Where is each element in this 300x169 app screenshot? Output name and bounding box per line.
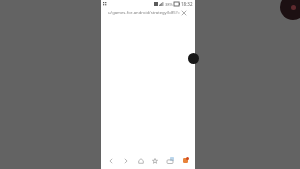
staticText: 18:32 xyxy=(181,1,193,7)
button[interactable]: Screen recorder xyxy=(280,0,300,20)
staticText: 38% xyxy=(165,2,173,7)
button[interactable]: Bookmarks xyxy=(148,153,162,168)
button[interactable]: Back xyxy=(104,153,118,168)
button[interactable]: Tabs xyxy=(163,153,177,168)
button[interactable]: Forward xyxy=(119,153,133,168)
button[interactable]: Home xyxy=(134,153,148,168)
staticText: u/games-for-android/strategy/b85?= xyxy=(108,10,180,16)
button[interactable]: u/games-for-android/strategy/b85?= xyxy=(105,9,191,17)
button[interactable]: Menu xyxy=(178,153,192,168)
button[interactable]: Stop loading xyxy=(180,9,188,17)
